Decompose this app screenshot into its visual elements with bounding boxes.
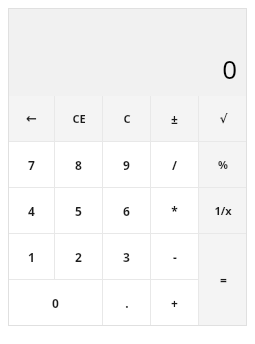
button[interactable]: 1/x — [199, 188, 247, 233]
staticText: 4 — [28, 203, 35, 219]
staticText: . — [125, 295, 129, 311]
button[interactable]: Backspace — [8, 96, 54, 141]
staticText: √ — [219, 112, 228, 126]
staticText: CE — [72, 111, 86, 126]
staticText: 6 — [123, 203, 130, 219]
button[interactable]: . — [103, 280, 150, 326]
staticText: 0 — [52, 295, 59, 311]
staticText: C — [123, 111, 131, 126]
button[interactable]: C — [103, 96, 150, 141]
button[interactable]: ± — [151, 96, 198, 141]
button[interactable]: % — [199, 142, 247, 187]
staticText: 1/x — [214, 203, 232, 218]
button[interactable]: - — [151, 234, 198, 279]
staticText: 0 — [222, 51, 237, 86]
button[interactable]: √ — [199, 96, 247, 141]
button[interactable]: = — [199, 234, 247, 326]
button[interactable]: 1 — [8, 234, 54, 279]
staticText: % — [218, 157, 228, 172]
button[interactable]: 4 — [8, 188, 54, 233]
button[interactable]: + — [151, 280, 198, 326]
staticText: 9 — [123, 157, 130, 173]
staticText: 7 — [28, 157, 35, 173]
button[interactable]: * — [151, 188, 198, 233]
button[interactable]: / — [151, 142, 198, 187]
staticText: * — [171, 203, 178, 219]
button[interactable]: 2 — [55, 234, 102, 279]
staticText: 2 — [75, 249, 82, 265]
button[interactable]: 0 — [8, 280, 102, 326]
staticText: = — [220, 272, 227, 288]
staticText: / — [172, 157, 177, 173]
button[interactable]: CE — [55, 96, 102, 141]
staticText: + — [171, 295, 178, 311]
button[interactable]: 9 — [103, 142, 150, 187]
button[interactable]: 7 — [8, 142, 54, 187]
staticText: ± — [171, 111, 178, 127]
staticText: 8 — [75, 157, 82, 173]
button[interactable]: 5 — [55, 188, 102, 233]
staticText: 5 — [75, 203, 82, 219]
staticText: 1 — [28, 249, 35, 265]
staticText: - — [173, 249, 177, 265]
staticText: ← — [26, 111, 37, 126]
staticText: 3 — [123, 249, 130, 265]
button[interactable]: 3 — [103, 234, 150, 279]
button[interactable]: 6 — [103, 188, 150, 233]
button[interactable]: 8 — [55, 142, 102, 187]
